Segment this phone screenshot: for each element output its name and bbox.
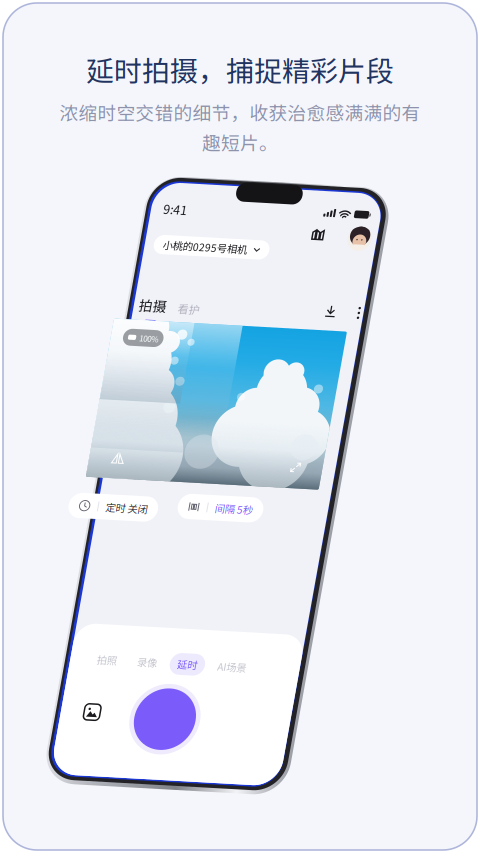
button[interactable]: 间隔 5秒: [79, 305, 164, 330]
button[interactable]: More options: [222, 112, 225, 124]
button[interactable]: Download: [190, 112, 201, 124]
staticText: 浓缩时空交错的细节，收获治愈感满满的有: [59, 98, 420, 125]
button[interactable]: 定时 关闭: [0, 310, 60, 335]
button[interactable]: 看护: [44, 115, 66, 131]
staticText: 延时拍摄，捕捉精彩片段: [86, 49, 394, 89]
button[interactable]: AI场景: [139, 462, 183, 484]
staticText: 间隔 5秒: [116, 310, 154, 325]
button[interactable]: 延时: [99, 462, 134, 484]
staticText: AI场景: [146, 465, 175, 480]
button[interactable]: 录像: [59, 462, 94, 484]
staticText: 看护: [44, 115, 66, 131]
staticText: 延时: [106, 465, 126, 480]
staticText: 小桃的0295号相机: [18, 54, 102, 69]
staticText: 趣短片。: [202, 129, 278, 156]
button[interactable]: Shutter: [69, 493, 139, 563]
button[interactable]: 小桃的0295号相机: [9, 52, 124, 71]
